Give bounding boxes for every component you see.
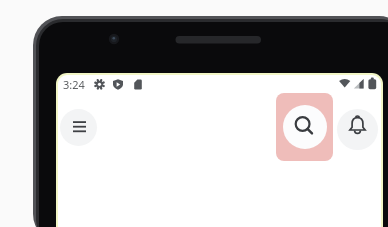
- button[interactable]: [283, 105, 327, 149]
- button[interactable]: [337, 109, 378, 150]
- staticText: 3:24: [63, 77, 85, 92]
- button[interactable]: [60, 109, 97, 146]
